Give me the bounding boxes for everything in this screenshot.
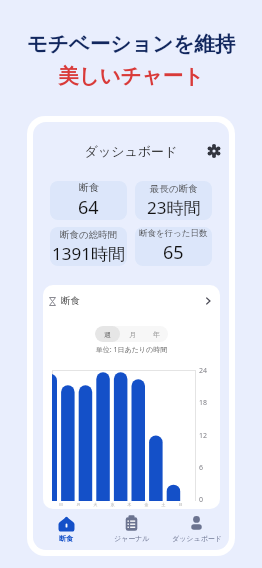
staticText: 木 xyxy=(121,502,138,507)
staticText: ジャーナル xyxy=(114,534,150,543)
button[interactable]: Settings xyxy=(206,143,222,159)
staticText: 64 xyxy=(78,195,99,220)
staticText: 1391時間 xyxy=(52,242,125,265)
staticText: 水 xyxy=(104,502,121,507)
button[interactable]: 月 xyxy=(120,326,144,342)
staticText: 23時間 xyxy=(147,196,201,219)
staticText: モチベーションを維持 xyxy=(0,31,262,57)
staticText: 断食を行った日数 xyxy=(139,228,208,239)
button[interactable]: ダッシュボード xyxy=(164,515,229,543)
staticText: 月 xyxy=(129,330,136,339)
staticText: ダッシュボード xyxy=(172,534,222,543)
button[interactable]: ジャーナル xyxy=(99,515,164,543)
staticText: 週 xyxy=(104,330,111,339)
staticText: 日 xyxy=(52,502,70,507)
staticText: 12 xyxy=(199,431,208,441)
staticText: 美しいチャート xyxy=(0,63,262,89)
button[interactable]: 断食を行った日数 xyxy=(135,227,212,266)
staticText: 断食 xyxy=(79,181,99,194)
staticText: 単位: 1日あたりの時間 xyxy=(43,345,220,355)
button[interactable]: 週 xyxy=(95,326,120,342)
staticText: 土 xyxy=(155,502,172,507)
staticText: 断食 xyxy=(61,295,80,307)
staticText: 金 xyxy=(138,502,155,507)
staticText: 最長の断食 xyxy=(150,183,198,195)
staticText: 18 xyxy=(199,398,208,408)
button[interactable]: 最長の断食 xyxy=(135,181,212,220)
staticText: 24 xyxy=(199,366,208,376)
button[interactable]: 年 xyxy=(144,326,168,342)
staticText: 0 xyxy=(199,495,204,505)
staticText: 年 xyxy=(153,330,160,339)
staticText: 日 xyxy=(172,502,189,507)
button[interactable]: Open details xyxy=(202,295,214,307)
button[interactable]: 断食 xyxy=(33,515,99,543)
button[interactable]: 断食 xyxy=(50,181,127,220)
staticText: 断食の総時間 xyxy=(60,229,118,241)
staticText: 65 xyxy=(163,240,184,265)
staticText: 火 xyxy=(87,502,104,507)
staticText: 月 xyxy=(70,502,87,507)
staticText: 断食 xyxy=(59,534,73,543)
staticText: ダッシュボード xyxy=(33,143,229,159)
staticText: 6 xyxy=(199,463,204,473)
button[interactable]: 断食の総時間 xyxy=(50,227,127,266)
